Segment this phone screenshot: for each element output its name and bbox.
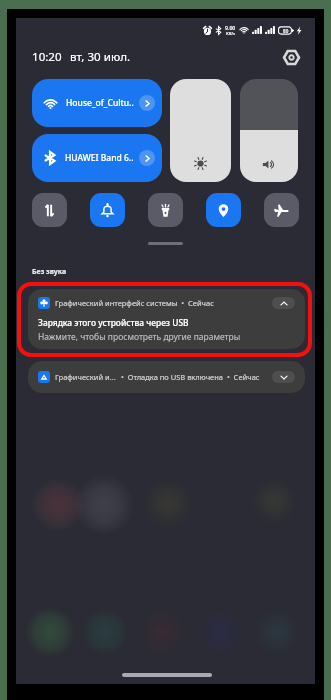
staticText: вт, 30 июл. — [70, 49, 131, 65]
staticText: 80 — [283, 28, 289, 34]
button[interactable]: Графический интерфейс системы • Сейчас — [28, 289, 305, 349]
staticText: • Отладка по USB включена • Сейчас — [121, 372, 260, 382]
button[interactable]: Location — [206, 193, 241, 227]
button[interactable]: House_of_Cultu.. — [32, 79, 162, 127]
button[interactable]: Collapse — [272, 297, 295, 309]
staticText: Графический и... — [55, 372, 116, 382]
staticText: Без звука — [32, 267, 67, 277]
staticText: 9.00 — [225, 24, 236, 31]
staticText: Зарядка этого устройства через USB — [38, 317, 189, 328]
button[interactable]: Airplane mode — [264, 193, 299, 227]
button[interactable]: Графический и... — [28, 361, 305, 393]
staticText: 10:20 — [32, 49, 62, 65]
staticText: KB/s — [226, 31, 236, 37]
button[interactable]: Settings — [279, 45, 303, 69]
staticText: HUAWEI Band 6.. — [65, 152, 134, 164]
staticText: House_of_Cultu.. — [66, 97, 134, 109]
button[interactable]: Brightness — [170, 79, 231, 182]
button[interactable]: Notifications — [90, 193, 125, 227]
button[interactable]: Expand — [272, 371, 295, 383]
button[interactable]: HUAWEI Band 6.. — [32, 134, 162, 182]
staticText: Графический интерфейс системы • Сейчас — [55, 298, 214, 308]
button[interactable]: Mobile data — [32, 193, 67, 227]
button[interactable]: Flashlight — [148, 193, 183, 227]
staticText: Нажмите, чтобы просмотреть другие параме… — [38, 331, 241, 343]
button[interactable]: Volume — [240, 79, 298, 182]
